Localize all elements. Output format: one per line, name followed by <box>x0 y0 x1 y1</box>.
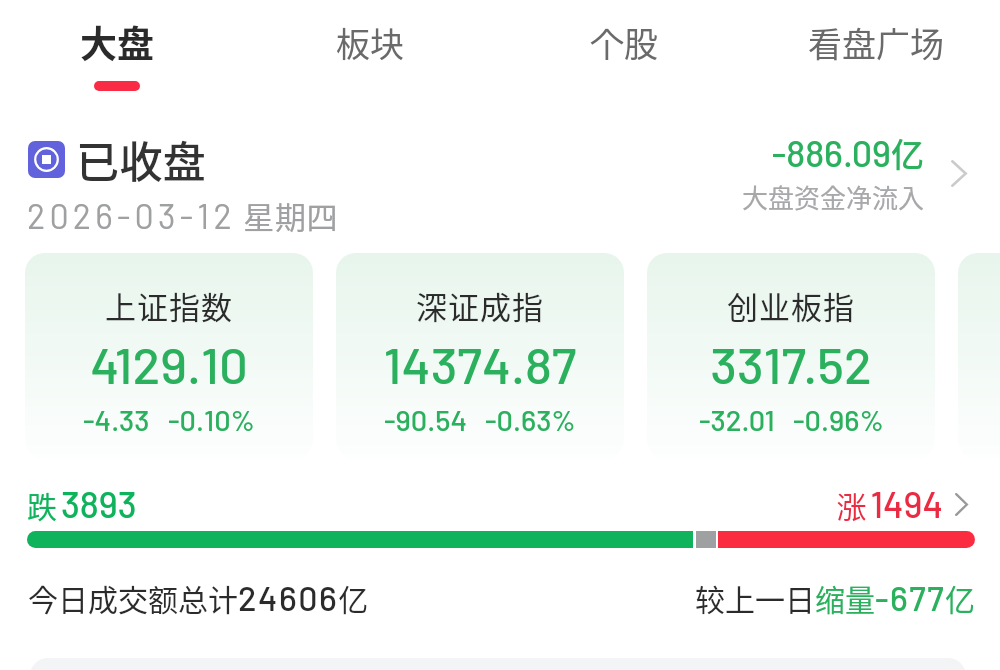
staticText: 较上一日缩量-677亿 <box>600 576 975 619</box>
other: 涨跌家数详情 <box>955 493 968 516</box>
staticText: 跌3893 <box>27 482 137 527</box>
staticText: -90.54 <box>384 402 467 437</box>
staticText: 涨1494 <box>700 482 943 527</box>
staticText: 深证成指 <box>336 283 624 328</box>
button[interactable]: 板块 <box>275 0 465 100</box>
button[interactable]: 深证成指 <box>336 253 624 459</box>
staticText: 4129.10 <box>25 333 313 394</box>
staticText: 14374.87 <box>336 333 624 394</box>
button[interactable]: 大盘 <box>22 0 212 100</box>
staticText: 个股 <box>529 18 719 67</box>
staticText: -32.01 <box>699 402 775 437</box>
staticText: 看盘广场 <box>781 18 971 67</box>
staticText: 板块 <box>275 18 465 67</box>
button[interactable]: 上证指数 <box>25 253 313 459</box>
button[interactable]: 个股 <box>529 0 719 100</box>
button[interactable]: 看盘广场 <box>781 0 971 100</box>
staticText: 3317.52 <box>647 333 935 394</box>
button[interactable]: 创业板指 <box>647 253 935 459</box>
staticText: 大盘资金净流入 <box>620 178 924 216</box>
staticText: 2026-03-12 星期四 <box>27 193 339 238</box>
other: 大盘资金净流入详情 <box>951 160 967 187</box>
staticText: 今日成交额总计24606亿 <box>28 576 369 619</box>
staticText: 大盘 <box>22 15 212 69</box>
button[interactable]: 科创50 <box>958 253 1000 459</box>
staticText: 已收盘 <box>76 128 207 190</box>
staticText: -0.63% <box>485 402 576 437</box>
staticText: 上证指数 <box>25 283 313 328</box>
staticText: -0.96% <box>793 402 884 437</box>
button[interactable]: 跌3893 <box>0 485 1000 560</box>
button[interactable]: 已收盘 <box>0 120 1000 238</box>
staticText: 创业板指 <box>647 283 935 328</box>
staticText: -886.09亿 <box>620 129 924 177</box>
staticText: -4.33 <box>83 402 150 437</box>
staticText: -0.10% <box>168 402 255 437</box>
